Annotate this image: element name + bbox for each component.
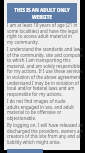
- staticText: my community.: [7, 39, 39, 45]
- staticText: local and/or federal laws and am: [7, 85, 75, 91]
- staticText: objectionable.: [7, 115, 37, 121]
- staticText: of the community, site and computer: [7, 52, 83, 58]
- staticText: By logging on, I will have released and: [7, 122, 83, 128]
- staticText: creators of this site from any and all: [7, 133, 81, 139]
- staticText: I understand the standards and laws: [7, 46, 83, 52]
- staticText: material to be offensive or: [7, 109, 62, 115]
- staticText: discharged the providers, owners and: [7, 128, 83, 134]
- staticText: THIS IS AN ADULT ONLY WEBSITE: [14, 7, 70, 21]
- staticText: I am at least 18 years of age (21 in: [7, 22, 78, 28]
- staticText: responsible for my actions.: [7, 91, 63, 97]
- staticText: some localities) and have the legal: [7, 28, 78, 34]
- staticText: adults engaged in sex, and adult: [7, 104, 74, 110]
- staticText: in violation of the above agreement, I: [7, 74, 83, 80]
- staticText: liability which might arise.: [7, 139, 61, 145]
- staticText: for my actions. If I use these services: [7, 68, 83, 74]
- staticText: I do not find images of nude: [7, 98, 66, 104]
- staticText: right to access adult material in: [7, 33, 72, 39]
- button[interactable]: THIS IS AN ADULT ONLY WEBSITE: [7, 3, 77, 23]
- staticText: to which I am transporting this: [7, 57, 71, 63]
- staticText: understand I may be in violation of: [7, 80, 80, 86]
- staticText: material, and am solely responsible: [7, 63, 81, 69]
